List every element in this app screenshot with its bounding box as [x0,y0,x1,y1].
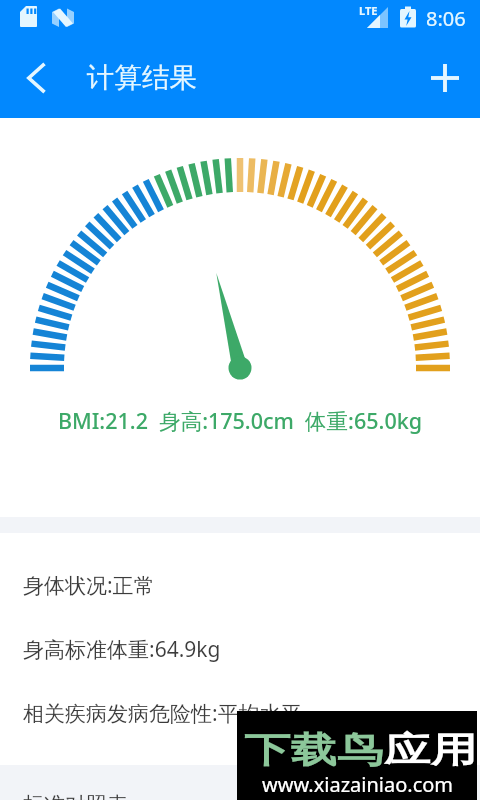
button[interactable]: 身高标准体重:64.9kg [0,617,480,681]
staticText: www.xiazainiao.com [262,771,454,798]
staticText: 8:06 [426,5,466,32]
staticText: 标准对照表 [23,792,128,800]
staticText: 应用 [384,728,477,772]
staticText: 身高标准体重:64.9kg [23,635,221,664]
button[interactable]: Add [419,52,471,104]
button[interactable]: Back [10,52,62,104]
staticText: 相关疾病发病危险性:平均水平 [23,699,302,728]
staticText: 下载鸟 [244,728,384,772]
staticText: BMI:21.2 身高:175.0cm 体重:65.0kg [0,406,480,435]
staticText: 计算结果 [87,61,197,96]
staticText: LTE [359,3,378,18]
button[interactable]: 相关疾病发病危险性:平均水平 [0,681,480,745]
button[interactable]: 身体状况:正常 [0,553,480,617]
staticText: 身体状况:正常 [23,571,155,600]
